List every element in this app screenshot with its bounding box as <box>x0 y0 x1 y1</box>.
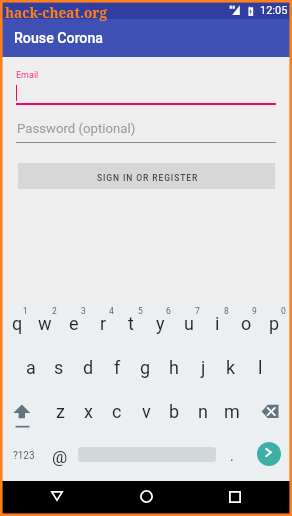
staticText: l <box>258 357 263 378</box>
button[interactable]: Shift <box>8 398 36 434</box>
staticText: y <box>156 313 165 334</box>
staticText: 5 <box>138 306 143 316</box>
button[interactable]: d <box>74 353 102 381</box>
button[interactable]: l <box>246 353 274 381</box>
staticText: x <box>84 401 93 422</box>
button[interactable]: Back <box>31 478 83 513</box>
button[interactable]: w <box>31 309 59 337</box>
button[interactable]: a <box>17 353 45 381</box>
staticText: d <box>83 357 94 378</box>
staticText: Rouse Corona <box>14 30 104 47</box>
staticText: 9 <box>252 306 257 316</box>
staticText: p <box>269 313 280 334</box>
button[interactable]: e <box>60 309 88 337</box>
button[interactable]: Recents <box>209 479 261 514</box>
staticText: f <box>114 357 121 378</box>
button[interactable]: f <box>103 353 131 381</box>
button[interactable]: i <box>203 309 231 337</box>
staticText: j <box>201 357 206 378</box>
button[interactable]: Enter <box>257 442 281 466</box>
staticText: o <box>241 313 252 334</box>
staticText: k <box>226 357 236 378</box>
button[interactable]: u <box>175 309 203 337</box>
staticText: h <box>169 357 179 378</box>
staticText: m <box>224 401 240 422</box>
button[interactable]: h <box>160 353 188 381</box>
staticText: 4 <box>109 306 114 316</box>
button[interactable]: s <box>45 353 73 381</box>
button[interactable]: n <box>189 397 217 425</box>
staticText: Password (optional) <box>17 121 136 136</box>
button[interactable]: x <box>74 397 102 425</box>
button[interactable]: SIGN IN OR REGISTER <box>18 163 275 189</box>
button[interactable]: ?123 <box>9 443 38 469</box>
staticText: 1 <box>23 306 28 316</box>
button[interactable]: y <box>146 309 174 337</box>
button[interactable]: g <box>131 353 159 381</box>
button[interactable]: t <box>117 309 145 337</box>
staticText: 6 <box>166 306 171 316</box>
button[interactable]: r <box>89 309 117 337</box>
button[interactable]: Backspace <box>256 398 284 426</box>
button[interactable]: Home <box>120 479 172 514</box>
staticText: hack-cheat.org <box>5 3 107 22</box>
button[interactable]: j <box>189 353 217 381</box>
staticText: b <box>169 401 180 422</box>
staticText: 0 <box>281 306 286 316</box>
staticText: a <box>26 357 36 378</box>
staticText: z <box>56 401 65 422</box>
staticText: v <box>142 401 151 422</box>
staticText: 2 <box>52 306 57 316</box>
button[interactable]: b <box>160 397 188 425</box>
staticText: s <box>54 357 64 378</box>
button[interactable]: p <box>260 309 288 337</box>
staticText: r <box>100 313 107 334</box>
staticText: . <box>230 448 234 464</box>
staticText: w <box>38 313 52 334</box>
button[interactable]: . <box>220 443 244 469</box>
staticText: 12:05 <box>260 4 288 17</box>
button[interactable]: c <box>103 397 131 425</box>
button[interactable]: o <box>232 309 260 337</box>
staticText: e <box>69 313 79 334</box>
staticText: SIGN IN OR REGISTER <box>97 173 199 183</box>
button[interactable]: k <box>217 353 245 381</box>
staticText: 8 <box>224 306 229 316</box>
staticText: q <box>12 313 23 334</box>
staticText: 7 <box>195 306 200 316</box>
staticText: Email <box>16 70 39 81</box>
button[interactable]: z <box>46 397 74 425</box>
staticText: n <box>198 401 208 422</box>
button[interactable]: @ <box>47 444 73 470</box>
staticText: i <box>215 313 220 334</box>
staticText: ?123 <box>13 450 35 462</box>
staticText: u <box>184 313 194 334</box>
button[interactable]: v <box>132 397 160 425</box>
button[interactable]: q <box>3 309 31 337</box>
staticText: 3 <box>81 306 86 316</box>
staticText: t <box>128 313 134 334</box>
button[interactable]: m <box>218 397 246 425</box>
staticText: g <box>140 357 151 378</box>
staticText: c <box>112 401 122 422</box>
staticText: @ <box>52 447 68 467</box>
